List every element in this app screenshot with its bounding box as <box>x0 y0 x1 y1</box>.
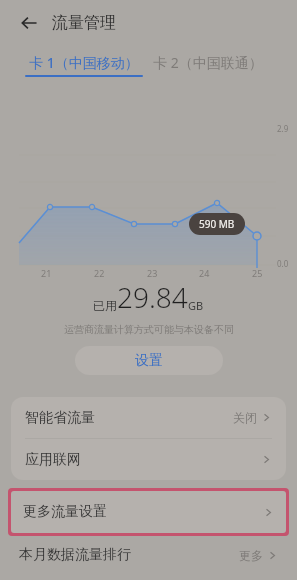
staticText: 卡 1（中国移动） <box>29 53 139 72</box>
staticText: 运营商流量计算方式可能与本设备不同 <box>64 323 234 336</box>
staticText: 应用联网 <box>25 451 81 469</box>
staticText: 0.0 <box>277 258 289 269</box>
staticText: 流量管理 <box>52 13 116 33</box>
staticText: 24 <box>199 267 210 279</box>
button[interactable]: 卡 1（中国移动） <box>25 53 143 77</box>
staticText: 卡 2（中国联通） <box>153 53 263 72</box>
button[interactable]: 应用联网 <box>11 439 286 480</box>
staticText: GB <box>188 298 204 313</box>
staticText: 更多 <box>239 548 263 563</box>
staticText: 23 <box>147 267 158 279</box>
button[interactable]: 智能省流量 <box>11 397 286 438</box>
staticText: 22 <box>94 267 105 279</box>
button[interactable]: 更多流量设置 <box>11 491 286 533</box>
staticText: 590 MB <box>199 217 235 231</box>
staticText: 本月数据流量排行 <box>19 546 131 564</box>
staticText: 25 <box>252 267 263 279</box>
button[interactable]: 本月数据流量排行 <box>19 546 278 564</box>
staticText: 29.84 <box>117 278 188 316</box>
staticText: 关闭 <box>233 410 257 425</box>
staticText: 21 <box>41 267 52 279</box>
button[interactable]: 卡 2（中国联通） <box>153 53 263 77</box>
button[interactable]: 设置 <box>75 346 223 375</box>
staticText: 设置 <box>135 352 163 370</box>
staticText: 2.9 <box>277 123 289 134</box>
staticText: 已用 <box>93 298 117 313</box>
button[interactable]: Back <box>12 6 46 40</box>
staticText: 智能省流量 <box>25 409 95 427</box>
staticText: 更多流量设置 <box>23 503 107 521</box>
